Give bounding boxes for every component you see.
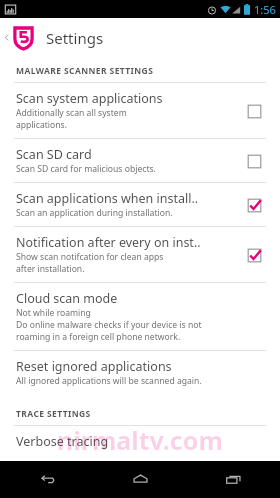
staticText: All ignored applications will be scanned… (16, 375, 202, 387)
staticText: Not while roaming (16, 307, 91, 319)
staticText: Settings (46, 28, 104, 48)
button[interactable]: Reset ignored applications (0, 351, 280, 394)
button[interactable]: Recent apps (187, 461, 280, 498)
staticText: applications. (16, 119, 68, 131)
staticText: Reset ignored applications (16, 358, 172, 375)
button[interactable]: Verbose tracing (0, 426, 280, 457)
staticText: Notification after every on inst.. (16, 234, 201, 251)
staticText: Show scan notifcation for clean apps (16, 251, 164, 263)
staticText: Do online malware checks if your device … (16, 319, 202, 331)
staticText: Scan SD card (16, 146, 92, 163)
button[interactable]: Notification after every on inst.. (0, 227, 280, 282)
button[interactable]: Cloud scan mode (0, 283, 280, 350)
staticText: Additionally scan all system (16, 107, 127, 119)
staticText: nirmaltv.com (57, 423, 223, 457)
staticText: 1:56 (254, 2, 276, 17)
staticText: Scan system applications (16, 90, 163, 107)
button[interactable]: Home (94, 461, 187, 498)
button[interactable]: Back (0, 18, 13, 57)
staticText: Scan SD card for malicious objects. (16, 163, 156, 175)
staticText: after installation. (16, 263, 85, 275)
button[interactable]: Scan applications when install.. (0, 183, 280, 226)
button[interactable]: Back (0, 461, 94, 498)
staticText: Verbose tracing (16, 433, 109, 450)
button[interactable]: Scan SD card (0, 139, 280, 182)
staticText: MALWARE SCANNER SETTINGS (16, 65, 154, 77)
staticText: Cloud scan mode (16, 290, 118, 307)
button[interactable]: Scan system applications (0, 83, 280, 138)
staticText: Scan applications when install.. (16, 190, 199, 207)
staticText: Scan an application during installation. (16, 207, 173, 219)
staticText: TRACE SETTINGS (16, 408, 91, 420)
staticText: roaming in a foreign cell phone network. (16, 331, 181, 343)
